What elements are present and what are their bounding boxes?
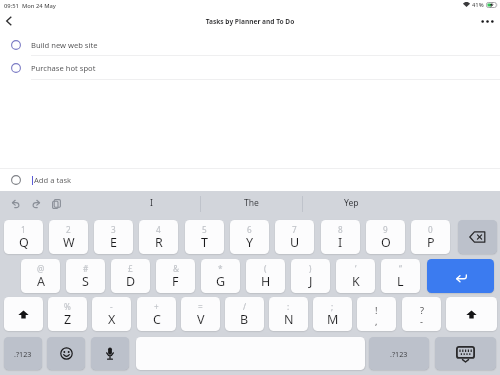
button[interactable]: Add a task <box>0 169 500 191</box>
staticText: D <box>126 273 136 290</box>
staticText: £ <box>128 263 133 274</box>
staticText: 41% <box>472 1 484 9</box>
button[interactable]: Voice input <box>91 337 129 370</box>
staticText: 6 <box>247 224 252 235</box>
button[interactable]: More options <box>477 11 497 30</box>
button[interactable]: : <box>269 297 308 331</box>
button[interactable]: 3 <box>94 220 133 254</box>
button[interactable]: / <box>225 297 264 331</box>
button[interactable]: Enter <box>427 259 494 293</box>
button[interactable]: Emoji <box>47 337 85 370</box>
staticText: M <box>327 311 339 328</box>
button[interactable]: % <box>48 297 87 331</box>
staticText: “ <box>399 263 402 274</box>
button[interactable]: Undo <box>7 193 25 214</box>
staticText: I <box>338 234 343 251</box>
staticText: 4 <box>156 224 161 235</box>
staticText: Y <box>246 234 254 251</box>
staticText: B <box>240 311 249 328</box>
button[interactable]: @ <box>21 259 60 293</box>
staticText: - <box>420 315 423 328</box>
button[interactable]: .?123 <box>4 337 42 370</box>
button[interactable]: Shift <box>446 297 497 331</box>
button[interactable]: ‘ <box>336 259 375 293</box>
button[interactable]: Redo <box>27 193 45 214</box>
staticText: N <box>284 311 294 328</box>
staticText: ) <box>309 263 312 274</box>
button[interactable]: Build new web site <box>0 34 500 56</box>
staticText: 2 <box>66 224 71 235</box>
staticText: + <box>154 301 159 312</box>
staticText: Purchase hot spot <box>31 63 96 73</box>
staticText: Build new web site <box>31 40 98 50</box>
staticText: O <box>381 234 391 251</box>
button[interactable]: * <box>201 259 240 293</box>
button[interactable]: I <box>103 191 199 212</box>
button[interactable]: Backspace <box>458 220 497 254</box>
button[interactable]: - <box>92 297 131 331</box>
button[interactable]: ) <box>291 259 330 293</box>
button[interactable]: 6 <box>230 220 269 254</box>
staticText: A <box>37 273 45 290</box>
button[interactable]: 8 <box>321 220 360 254</box>
button[interactable]: Back <box>2 11 16 30</box>
staticText: .?123 <box>390 349 408 359</box>
staticText: L <box>397 273 404 290</box>
staticText: 7 <box>292 224 297 235</box>
staticText: ? <box>420 304 424 317</box>
button[interactable]: 2 <box>49 220 88 254</box>
staticText: Mon 24 May <box>22 2 56 10</box>
button[interactable]: ( <box>246 259 285 293</box>
staticText: & <box>173 263 179 274</box>
staticText: * <box>218 263 223 274</box>
staticText: = <box>198 301 203 312</box>
staticText: ! <box>375 304 378 317</box>
staticText: ; <box>331 301 334 312</box>
button[interactable]: “ <box>381 259 420 293</box>
staticText: - <box>110 301 113 312</box>
button[interactable]: £ <box>111 259 150 293</box>
staticText: Add a task <box>34 175 72 185</box>
staticText: X <box>108 311 116 328</box>
staticText: K <box>352 273 360 290</box>
staticText: E <box>110 234 117 251</box>
button[interactable]: Yep <box>303 191 399 212</box>
button[interactable]: 1 <box>4 220 43 254</box>
button[interactable]: 4 <box>139 220 178 254</box>
staticText: U <box>290 234 300 251</box>
button[interactable]: + <box>137 297 176 331</box>
button[interactable]: 5 <box>185 220 224 254</box>
staticText: .?123 <box>14 349 32 359</box>
button[interactable]: 0 <box>411 220 450 254</box>
staticText: T <box>201 234 208 251</box>
staticText: : <box>287 301 290 312</box>
button[interactable]: ; <box>313 297 352 331</box>
button[interactable]: Purchase hot spot <box>0 57 500 79</box>
button[interactable]: & <box>156 259 195 293</box>
staticText: Tasks by Planner and To Do <box>0 17 500 26</box>
button[interactable]: Hide keyboard <box>435 337 496 370</box>
button[interactable]: Shift <box>4 297 43 331</box>
staticText: ‘ <box>355 263 357 274</box>
button[interactable]: .?123 <box>369 337 429 370</box>
button[interactable]: The <box>203 191 299 212</box>
button[interactable]: 7 <box>275 220 314 254</box>
staticText: 5 <box>202 224 207 235</box>
staticText: # <box>83 263 89 274</box>
staticText: Q <box>19 234 29 251</box>
staticText: V <box>197 311 205 328</box>
staticText: H <box>261 273 271 290</box>
staticText: J <box>309 273 313 290</box>
staticText: Yep <box>344 197 359 209</box>
staticText: / <box>243 301 247 312</box>
staticText: % <box>64 301 71 312</box>
staticText: @ <box>37 263 45 274</box>
button[interactable]: = <box>181 297 220 331</box>
button[interactable]: # <box>66 259 105 293</box>
button[interactable]: 9 <box>366 220 405 254</box>
button[interactable]: , <box>357 297 396 331</box>
button[interactable]: - <box>402 297 441 331</box>
button[interactable]: Clipboard <box>47 193 65 214</box>
staticText: 3 <box>111 224 116 235</box>
